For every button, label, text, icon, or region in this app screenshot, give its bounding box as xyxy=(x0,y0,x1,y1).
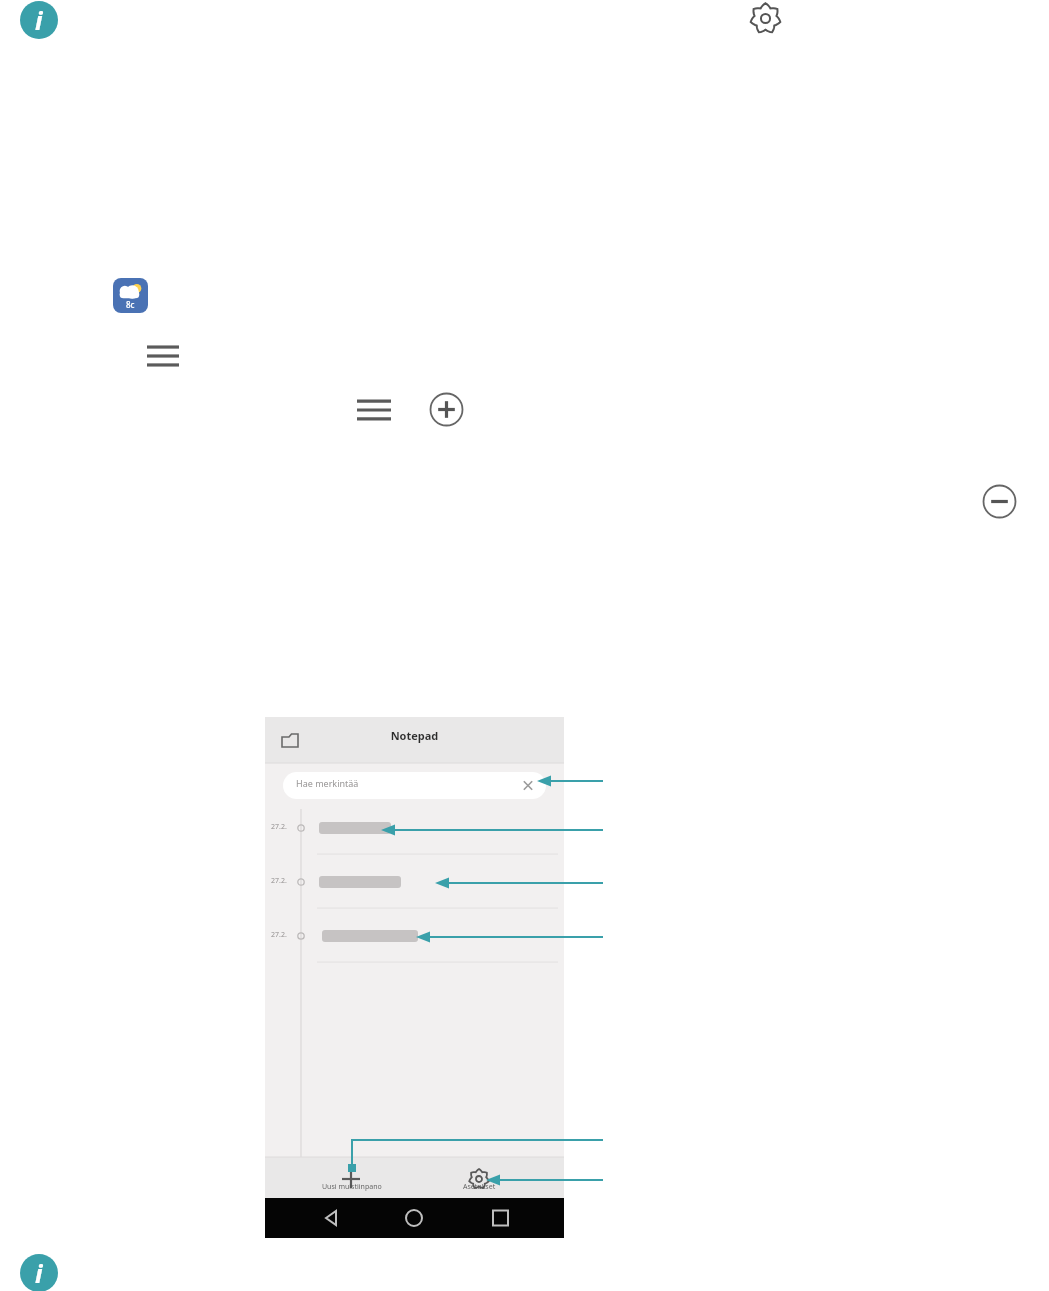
staticText: Uusi muistiinpano xyxy=(322,1182,382,1192)
button[interactable]: Information xyxy=(20,1254,58,1291)
button[interactable]: Menu xyxy=(357,396,391,424)
button[interactable]: Remove xyxy=(982,484,1017,519)
staticText: 8c xyxy=(126,299,135,310)
staticText: Asetukset xyxy=(463,1182,496,1192)
staticText: 27.2. xyxy=(271,876,287,886)
staticText: 27.2. xyxy=(271,930,287,940)
staticText: Notepad xyxy=(265,728,564,748)
button[interactable]: Asetukset xyxy=(437,1157,522,1198)
button[interactable]: Uusi muistiinpano xyxy=(305,1157,398,1198)
button[interactable]: Weather xyxy=(113,278,148,313)
staticText: Hae merkintää xyxy=(296,777,359,789)
button[interactable]: Information xyxy=(20,1,58,39)
staticText: i xyxy=(35,1256,43,1290)
staticText: i xyxy=(35,3,43,37)
button[interactable]: Settings xyxy=(749,2,782,35)
button[interactable]: Menu xyxy=(147,342,179,370)
button[interactable]: Add xyxy=(429,392,464,427)
staticText: 27.2. xyxy=(271,822,287,832)
